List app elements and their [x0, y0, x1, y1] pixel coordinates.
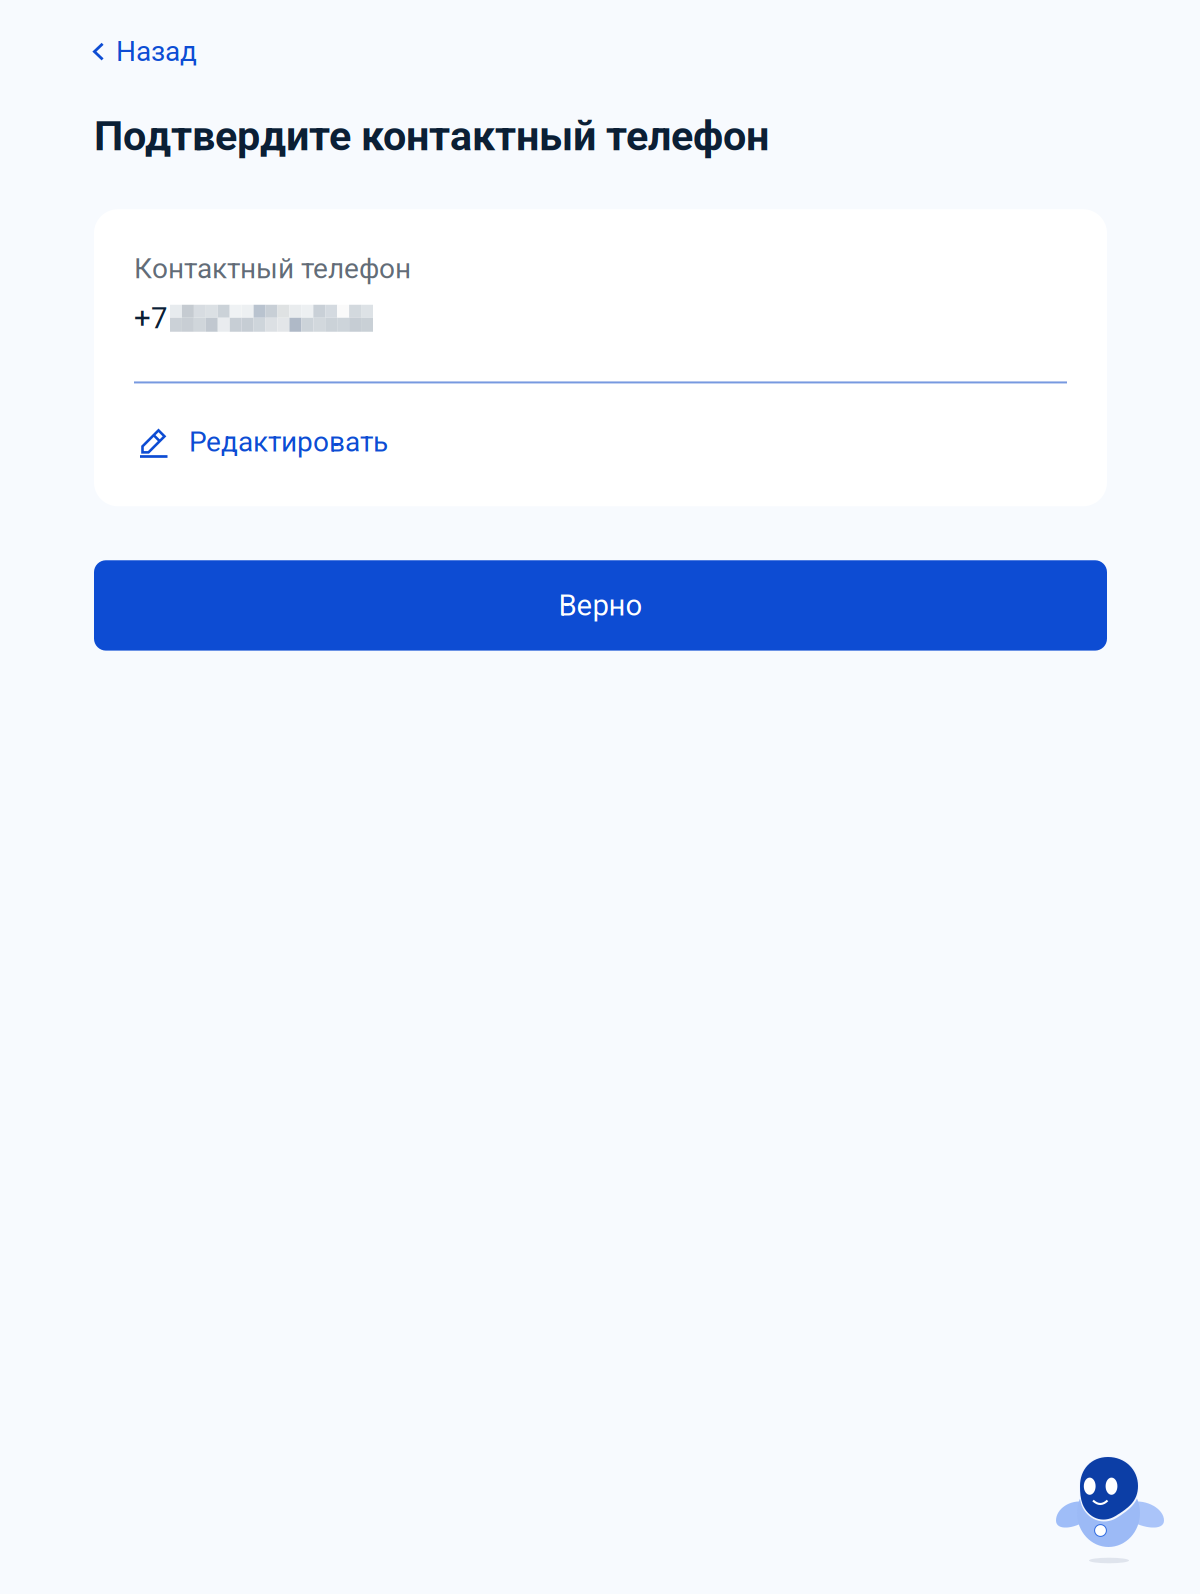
staticText: Назад: [116, 35, 197, 68]
button[interactable]: Робот Макс — помощник: [1055, 1456, 1200, 1594]
button[interactable]: Редактировать: [134, 383, 388, 458]
staticText: +7: [134, 301, 167, 335]
staticText: Подтвердите контактный телефон: [94, 112, 769, 160]
button[interactable]: Назад: [0, 0, 227, 82]
button[interactable]: Верно: [94, 560, 1107, 651]
staticText: Контактный телефон: [134, 252, 411, 285]
staticText: Редактировать: [189, 425, 388, 458]
staticText: Верно: [558, 588, 642, 623]
